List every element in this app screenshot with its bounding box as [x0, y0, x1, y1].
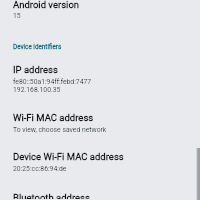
- staticText: 20:25:cc:86:94:de: [13, 165, 67, 173]
- button[interactable]: Bluetooth address: [0, 192, 200, 199]
- staticText: fe80::50a1:94ff:febd:7477: [13, 78, 92, 86]
- staticText: Device identifiers: [13, 43, 62, 50]
- button[interactable]: Android version: [0, 0, 200, 20]
- button[interactable]: IP address: [0, 64, 200, 94]
- staticText: Wi-Fi MAC address: [13, 112, 94, 123]
- staticText: To view, choose saved network: [13, 126, 107, 134]
- button[interactable]: Device identifiers: [0, 43, 200, 50]
- other: Scroll position: [196, 148, 200, 200]
- staticText: Android version: [13, 0, 80, 10]
- button[interactable]: Wi-Fi MAC address: [0, 112, 200, 134]
- staticText: Device Wi-Fi MAC address: [13, 151, 124, 162]
- staticText: IP address: [13, 64, 58, 75]
- button[interactable]: Device Wi-Fi MAC address: [0, 151, 200, 173]
- staticText: Bluetooth address: [13, 192, 90, 199]
- staticText: 192.168.100.35: [13, 86, 61, 94]
- staticText: 15: [13, 12, 21, 20]
